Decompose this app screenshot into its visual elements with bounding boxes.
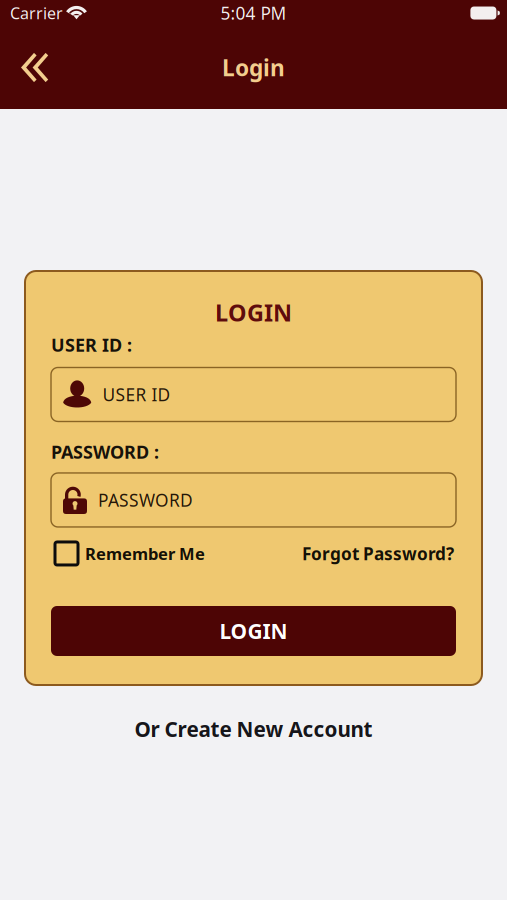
staticText: Forgot Password?	[302, 542, 454, 565]
staticText: Carrier	[10, 2, 63, 24]
staticText: USER ID :	[51, 332, 132, 357]
staticText: Or Create New Account	[134, 715, 372, 743]
button[interactable]: LOGIN	[51, 606, 456, 656]
staticText: LOGIN	[219, 617, 287, 645]
staticText: USER ID	[102, 383, 170, 406]
staticText: LOGIN	[215, 296, 292, 328]
staticText: PASSWORD :	[51, 439, 159, 464]
staticText: Login	[222, 52, 285, 82]
staticText: 5:04 PM	[220, 1, 286, 24]
staticText: PASSWORD	[98, 488, 193, 511]
button[interactable]: Remember Me	[51, 541, 205, 565]
button[interactable]: Back	[0, 39, 65, 96]
staticText: Remember Me	[85, 542, 205, 565]
button[interactable]: Or Create New Account	[134, 716, 372, 742]
button[interactable]: Forgot Password?	[302, 541, 456, 565]
